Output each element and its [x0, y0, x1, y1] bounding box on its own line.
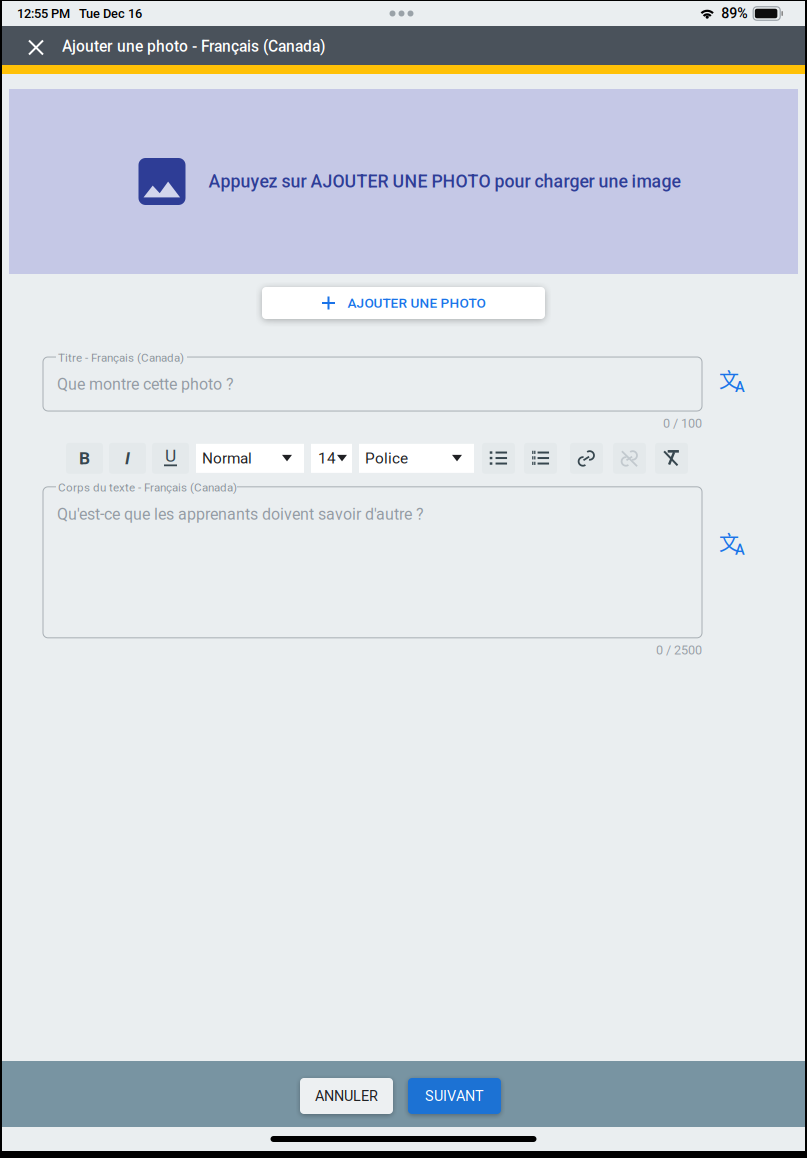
- button[interactable]: Italique: [109, 443, 146, 474]
- staticText: Qu'est-ce que les apprenants doivent sav…: [57, 505, 424, 524]
- staticText: ANNULER: [315, 1088, 378, 1104]
- staticText: Titre - Français (Canada): [58, 351, 184, 365]
- button[interactable]: Supprimer le lien: [613, 443, 646, 474]
- button[interactable]: Traduire le corps du texte: [718, 530, 748, 560]
- staticText: 文: [719, 364, 739, 393]
- button[interactable]: 14: [311, 444, 352, 473]
- button[interactable]: Gras: [66, 443, 103, 474]
- button[interactable]: SUIVANT: [408, 1078, 501, 1114]
- staticText: PM: [51, 6, 70, 21]
- staticText: 89%: [721, 5, 747, 22]
- staticText: 0 / 100: [663, 416, 702, 431]
- staticText: AJOUTER UNE PHOTO: [347, 295, 485, 311]
- staticText: Appuyez sur AJOUTER UNE PHOTO pour charg…: [208, 171, 680, 192]
- staticText: Normal: [202, 449, 252, 467]
- button[interactable]: ANNULER: [300, 1078, 393, 1114]
- staticText: A: [735, 541, 745, 558]
- staticText: Que montre cette photo ?: [57, 375, 234, 394]
- button[interactable]: Fermer: [19, 30, 53, 64]
- button[interactable]: Liste à puces: [482, 443, 515, 474]
- button[interactable]: Normal: [196, 444, 304, 473]
- staticText: I: [125, 448, 130, 468]
- staticText: 12:55: [17, 6, 48, 21]
- staticText: SUIVANT: [425, 1088, 484, 1104]
- button[interactable]: Traduire le titre: [718, 367, 748, 397]
- button[interactable]: Police: [359, 444, 474, 473]
- staticText: 14: [318, 449, 336, 467]
- button[interactable]: Liste numérotée: [524, 443, 557, 474]
- staticText: Tue Dec 16: [79, 6, 142, 21]
- staticText: Police: [365, 449, 408, 467]
- staticText: U: [165, 446, 176, 466]
- staticText: Ajouter une photo - Français (Canada): [62, 37, 325, 56]
- staticText: Corps du texte - Français (Canada): [58, 481, 237, 494]
- staticText: A: [735, 378, 745, 396]
- button[interactable]: Effacer la mise en forme: [655, 443, 688, 474]
- staticText: B: [79, 448, 90, 468]
- button[interactable]: Ajouter une photo: [262, 287, 545, 319]
- button[interactable]: Souligné: [152, 443, 189, 474]
- staticText: 0 / 2500: [656, 643, 702, 658]
- button[interactable]: Insérer un lien: [570, 443, 603, 474]
- staticText: 文: [719, 527, 739, 556]
